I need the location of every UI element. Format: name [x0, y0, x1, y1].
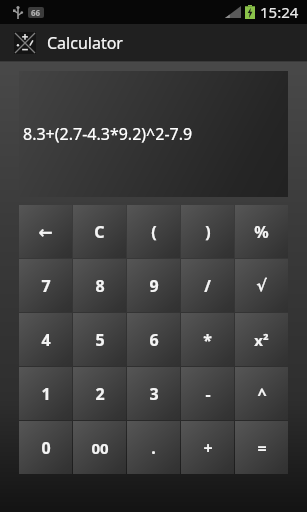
button[interactable]: 1 [19, 367, 72, 420]
staticText: ← [38, 222, 53, 242]
button[interactable]: 0 [19, 421, 72, 474]
staticText: 0 [41, 437, 51, 459]
staticText: . [151, 437, 156, 459]
button[interactable]: C [73, 205, 126, 258]
button[interactable]: 8.3+(2.7-4.3*9.2)^2-7.9 [19, 71, 288, 197]
staticText: √ [256, 276, 267, 295]
staticText: / [204, 275, 211, 297]
button[interactable]: . [127, 421, 180, 474]
button[interactable]: Backspace [19, 205, 72, 258]
staticText: 15:24 [260, 2, 299, 22]
button[interactable]: x² [235, 313, 288, 366]
button[interactable]: / [181, 259, 234, 312]
staticText: 4 [41, 329, 51, 351]
staticText: 8.3+(2.7-4.3*9.2)^2-7.9 [23, 123, 193, 145]
button[interactable]: * [181, 313, 234, 366]
staticText: 66 [31, 7, 41, 18]
staticText: Calculator [47, 32, 123, 54]
button[interactable]: % [235, 205, 288, 258]
staticText: 8 [95, 275, 105, 297]
button[interactable]: ^ [235, 367, 288, 420]
staticText: ( [151, 221, 157, 243]
button[interactable]: Calculator [0, 24, 307, 62]
button[interactable]: 2 [73, 367, 126, 420]
staticText: x² [254, 330, 269, 350]
staticText: ^ [257, 383, 267, 405]
button[interactable]: 3 [127, 367, 180, 420]
staticText: 00 [91, 438, 109, 458]
staticText: 1 [41, 383, 51, 405]
button[interactable]: - [181, 367, 234, 420]
button[interactable]: 4 [19, 313, 72, 366]
staticText: 9 [149, 275, 159, 297]
button[interactable]: = [235, 421, 288, 474]
button[interactable]: 7 [19, 259, 72, 312]
button[interactable]: 00 [73, 421, 126, 474]
button[interactable]: √ [235, 259, 288, 312]
staticText: 2 [95, 383, 105, 405]
staticText: + [203, 437, 213, 459]
staticText: 6 [149, 329, 159, 351]
button[interactable]: 5 [73, 313, 126, 366]
staticText: = [257, 437, 267, 459]
button[interactable]: + [181, 421, 234, 474]
staticText: C [94, 221, 105, 243]
staticText: * [203, 329, 212, 351]
button[interactable]: 6 [127, 313, 180, 366]
button[interactable]: 9 [127, 259, 180, 312]
staticText: 3 [149, 383, 159, 405]
staticText: ) [205, 221, 211, 243]
staticText: 5 [95, 329, 105, 351]
staticText: 7 [41, 275, 51, 297]
button[interactable]: ( [127, 205, 180, 258]
staticText: - [205, 383, 211, 405]
button[interactable]: 8 [73, 259, 126, 312]
staticText: % [254, 221, 269, 243]
button[interactable]: ) [181, 205, 234, 258]
